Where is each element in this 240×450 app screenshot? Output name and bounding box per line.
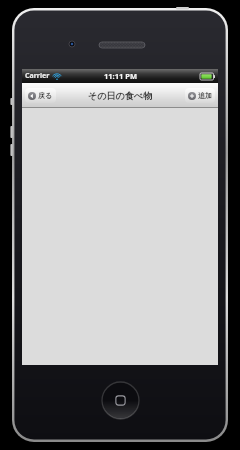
staticText: その日の食べ物 (88, 90, 152, 101)
staticText: 追加 (198, 91, 212, 100)
button[interactable]: 戻る (28, 88, 53, 103)
button[interactable]: Home (102, 382, 139, 419)
staticText: 11:11 PM (104, 71, 137, 81)
staticText: 戻る (38, 91, 53, 100)
staticText: Carrier (25, 71, 50, 81)
button[interactable]: 追加 (188, 88, 212, 103)
